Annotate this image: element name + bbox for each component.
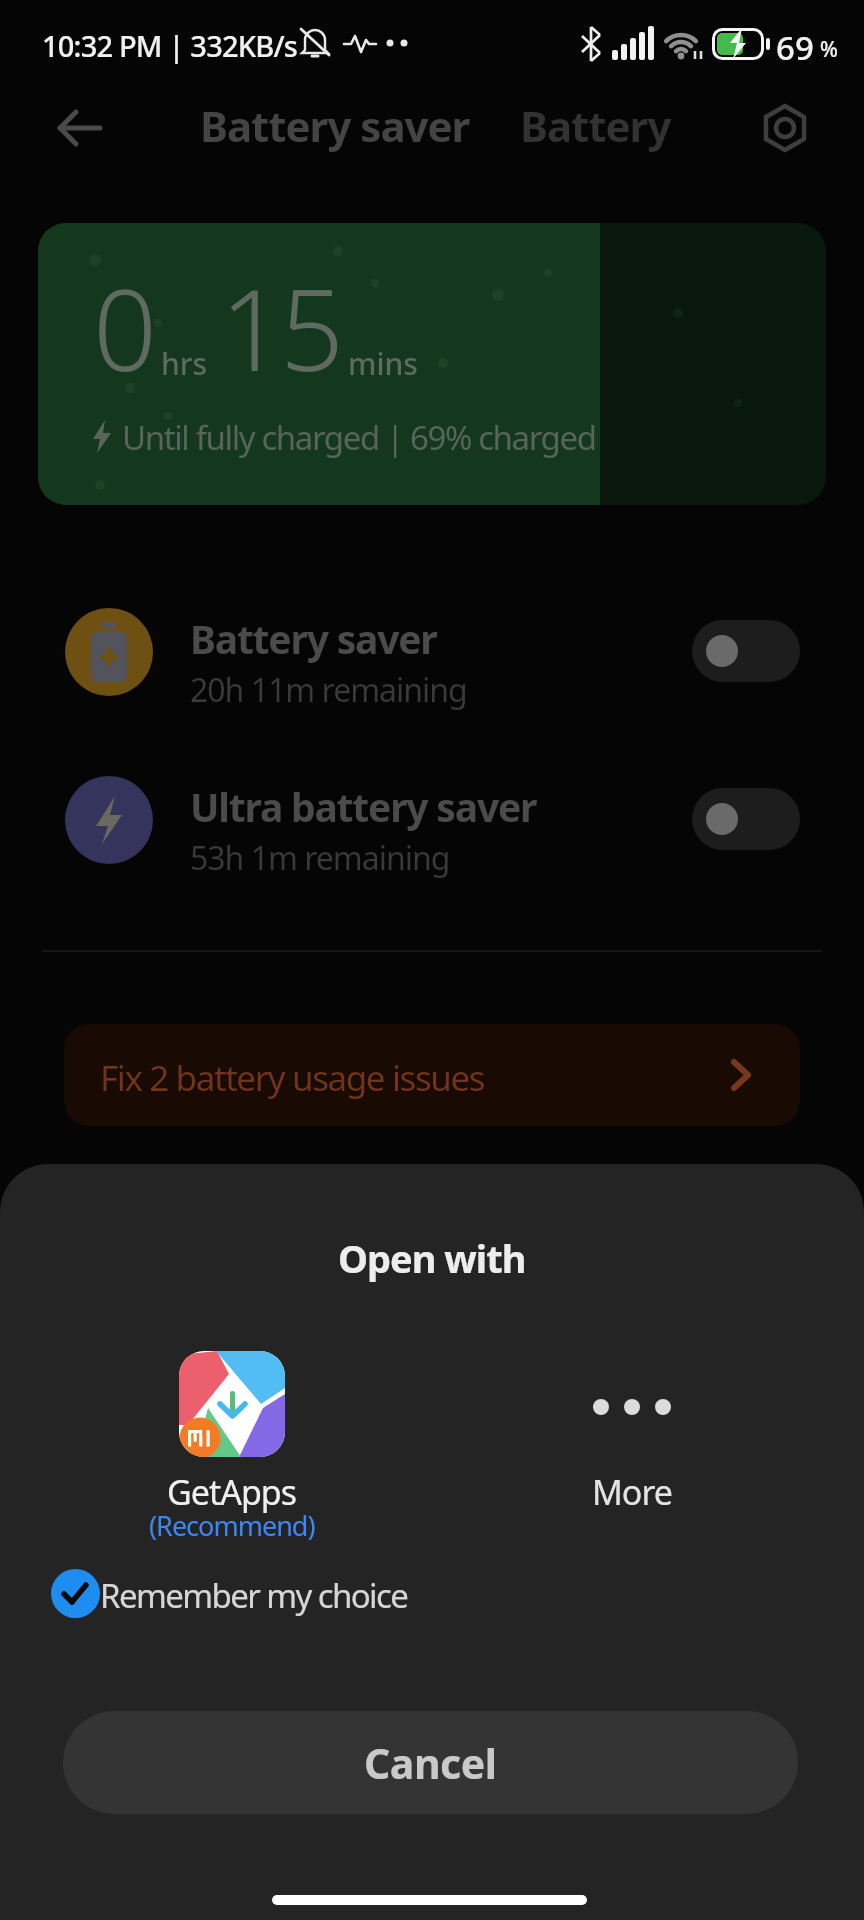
staticText: GetApps bbox=[167, 1469, 297, 1515]
staticText: Battery saver bbox=[190, 612, 437, 665]
staticText: (Recommend) bbox=[149, 1507, 315, 1544]
staticText: Cancel bbox=[364, 1735, 497, 1791]
staticText: mins bbox=[348, 343, 418, 384]
button[interactable] bbox=[48, 100, 112, 156]
staticText: Battery bbox=[520, 97, 671, 154]
button[interactable]: Cancel bbox=[63, 1711, 798, 1814]
staticText: Ultra battery saver bbox=[190, 780, 537, 833]
button[interactable]: Remember my choice bbox=[40, 1559, 460, 1629]
staticText: More bbox=[592, 1469, 672, 1515]
staticText: 15 bbox=[220, 251, 340, 404]
staticText: hrs bbox=[161, 343, 208, 384]
staticText: 0 bbox=[93, 251, 153, 404]
button[interactable]: Ultra battery saver bbox=[0, 776, 864, 886]
button[interactable]: Battery saver bbox=[0, 608, 864, 718]
staticText: 53h 1m remaining bbox=[190, 836, 450, 880]
staticText: Remember my choice bbox=[100, 1573, 408, 1618]
staticText: Until fully charged | 69% charged bbox=[122, 415, 596, 460]
staticText: Battery saver bbox=[200, 97, 470, 154]
button[interactable]: More bbox=[521, 1351, 743, 1551]
staticText: Open with bbox=[338, 1232, 526, 1284]
staticText: Fix 2 battery usage issues bbox=[100, 1054, 485, 1102]
staticText: 10:32 PM | 332KB/s bbox=[42, 26, 298, 65]
staticText: 20h 11m remaining bbox=[190, 668, 467, 712]
staticText: 69 bbox=[776, 25, 814, 70]
staticText: % bbox=[820, 35, 838, 64]
button[interactable]: GetApps bbox=[121, 1351, 343, 1551]
button[interactable] bbox=[755, 100, 815, 156]
button[interactable]: Fix 2 battery usage issues bbox=[64, 1024, 800, 1126]
